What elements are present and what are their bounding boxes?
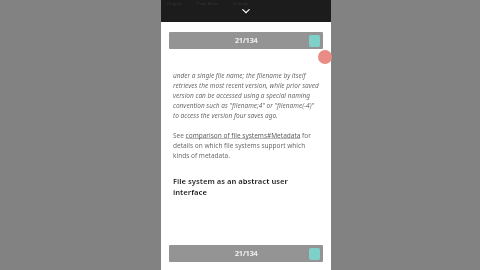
staticText: 21/134	[235, 36, 258, 46]
button[interactable]: 21/134	[169, 245, 323, 262]
staticText: Original	[167, 1, 183, 6]
staticText: Page Mode	[197, 1, 219, 6]
staticText: File system as an abstract user interfac…	[173, 176, 319, 197]
staticText: under a single file name; the filename b…	[173, 71, 319, 120]
staticText: Settings	[233, 1, 249, 6]
button[interactable]: Collapse	[238, 3, 254, 19]
staticText: 21/134	[235, 249, 258, 259]
button[interactable]: See comparison of file systems#Metadata …	[173, 131, 319, 160]
button[interactable]: 21/134	[169, 32, 323, 49]
